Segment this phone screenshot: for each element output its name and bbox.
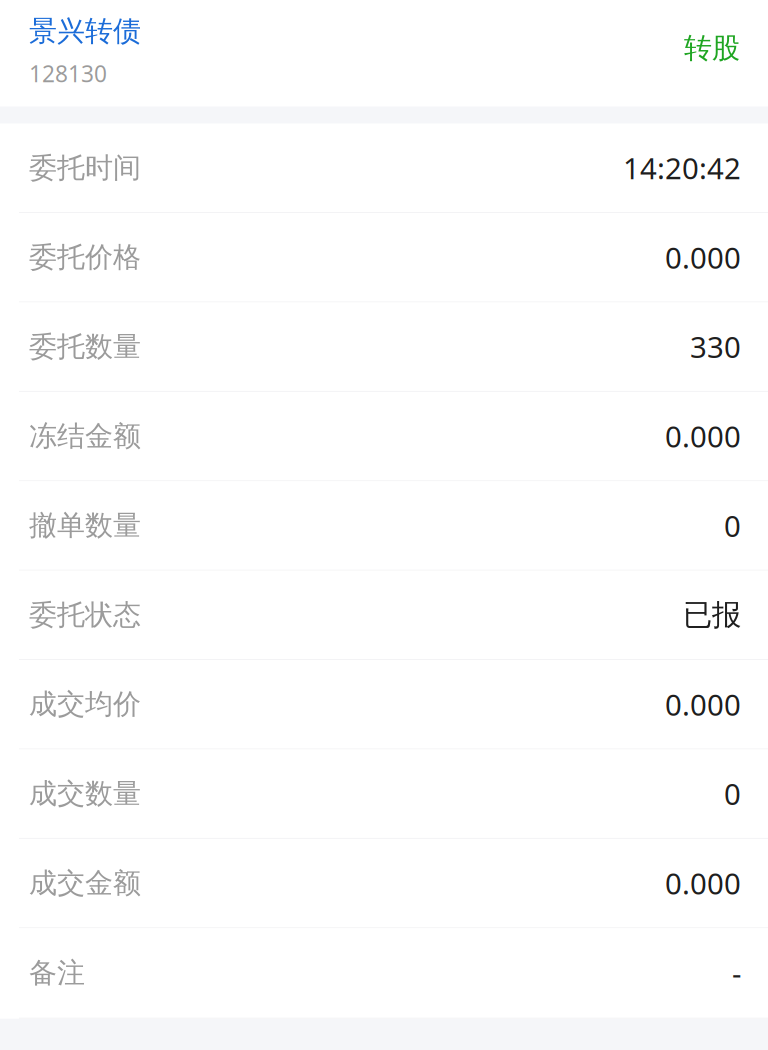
button[interactable]: 委托状态 (0, 571, 768, 660)
staticText: 0 (724, 774, 741, 813)
staticText: 0 (724, 506, 741, 545)
staticText: 0.000 (665, 238, 741, 277)
button[interactable]: 冻结金额 (0, 392, 768, 481)
staticText: 备注 (29, 956, 85, 990)
button[interactable]: 撤单数量 (0, 481, 768, 571)
staticText: 128130 (29, 58, 107, 88)
staticText: 委托状态 (29, 598, 141, 632)
button[interactable]: 备注 (0, 928, 768, 1018)
button[interactable]: 委托时间 (0, 124, 768, 213)
button[interactable]: 景兴转债 (29, 14, 141, 88)
button[interactable]: 成交均价 (0, 660, 768, 749)
staticText: 0.000 (665, 417, 741, 456)
staticText: 成交数量 (29, 776, 141, 811)
staticText: 330 (690, 327, 741, 366)
staticText: 委托数量 (29, 329, 141, 364)
staticText: 委托价格 (29, 240, 141, 274)
staticText: 成交金额 (29, 866, 141, 900)
staticText: 0.000 (665, 864, 741, 903)
button[interactable]: 成交金额 (0, 839, 768, 928)
staticText: 14:20:42 (623, 148, 741, 187)
staticText: 已报 (683, 597, 741, 633)
button[interactable]: 委托价格 (0, 213, 768, 302)
staticText: 0.000 (665, 685, 741, 724)
staticText: 成交均价 (29, 687, 141, 721)
button[interactable]: 成交数量 (0, 749, 768, 839)
staticText: 委托时间 (29, 151, 141, 185)
staticText: 转股 (684, 31, 740, 65)
button[interactable]: 委托数量 (0, 302, 768, 392)
staticText: 冻结金额 (29, 419, 141, 453)
staticText: 撤单数量 (29, 508, 141, 543)
button[interactable]: 转股 (684, 14, 740, 65)
staticText: 景兴转债 (29, 14, 141, 48)
staticText: - (732, 953, 741, 992)
